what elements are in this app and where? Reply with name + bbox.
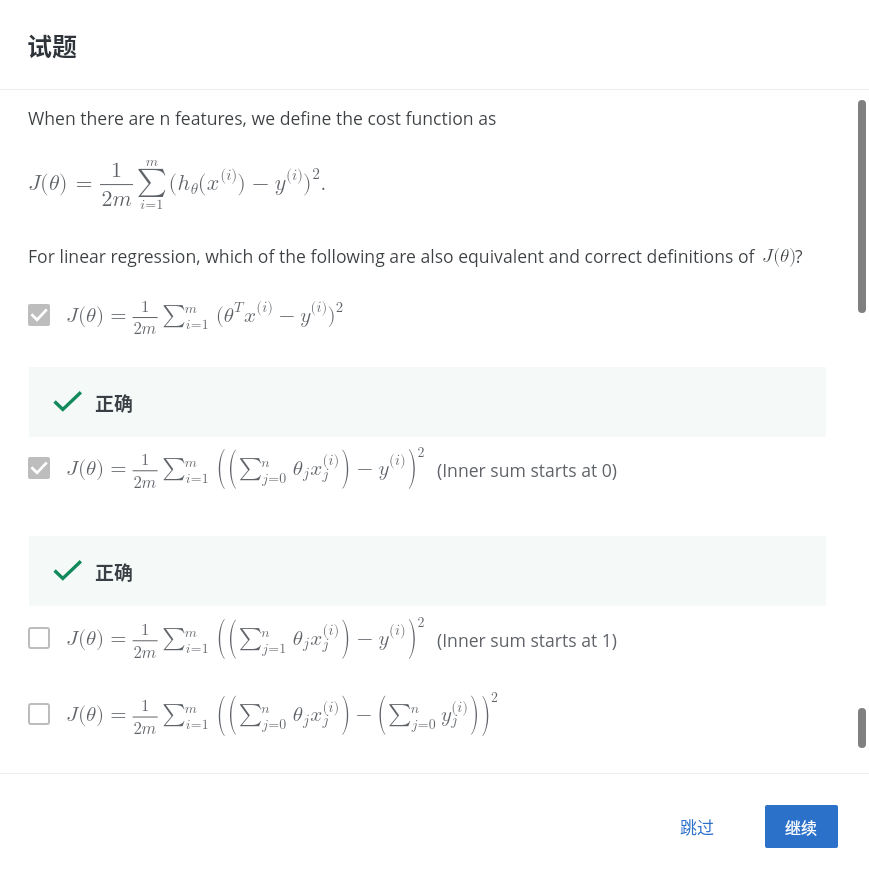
- button[interactable]: 跳过: [668, 805, 726, 848]
- other: Selected answer: [28, 457, 50, 479]
- staticText: ?: [795, 244, 803, 268]
- button[interactable]: 正确: [29, 536, 826, 606]
- other: Answer option: [28, 703, 50, 725]
- staticText: 试题: [27, 27, 78, 63]
- button[interactable]: [0, 612, 869, 664]
- other: Selected answer: [28, 304, 50, 326]
- button[interactable]: [0, 688, 869, 740]
- button[interactable]: [0, 289, 869, 341]
- staticText: (Inner sum starts at 1): [437, 628, 618, 652]
- staticText: When there are n features, we define the…: [28, 106, 497, 130]
- button[interactable]: 正确: [29, 367, 826, 437]
- staticText: For linear regression, which of the foll…: [28, 244, 755, 268]
- other: Answer option: [28, 627, 50, 649]
- staticText: 正确: [95, 558, 134, 586]
- button[interactable]: [0, 442, 869, 494]
- staticText: 正确: [95, 389, 134, 417]
- staticText: 继续: [785, 815, 818, 838]
- button[interactable]: 继续: [765, 805, 838, 848]
- staticText: 跳过: [680, 814, 714, 839]
- staticText: (Inner sum starts at 0): [437, 458, 618, 482]
